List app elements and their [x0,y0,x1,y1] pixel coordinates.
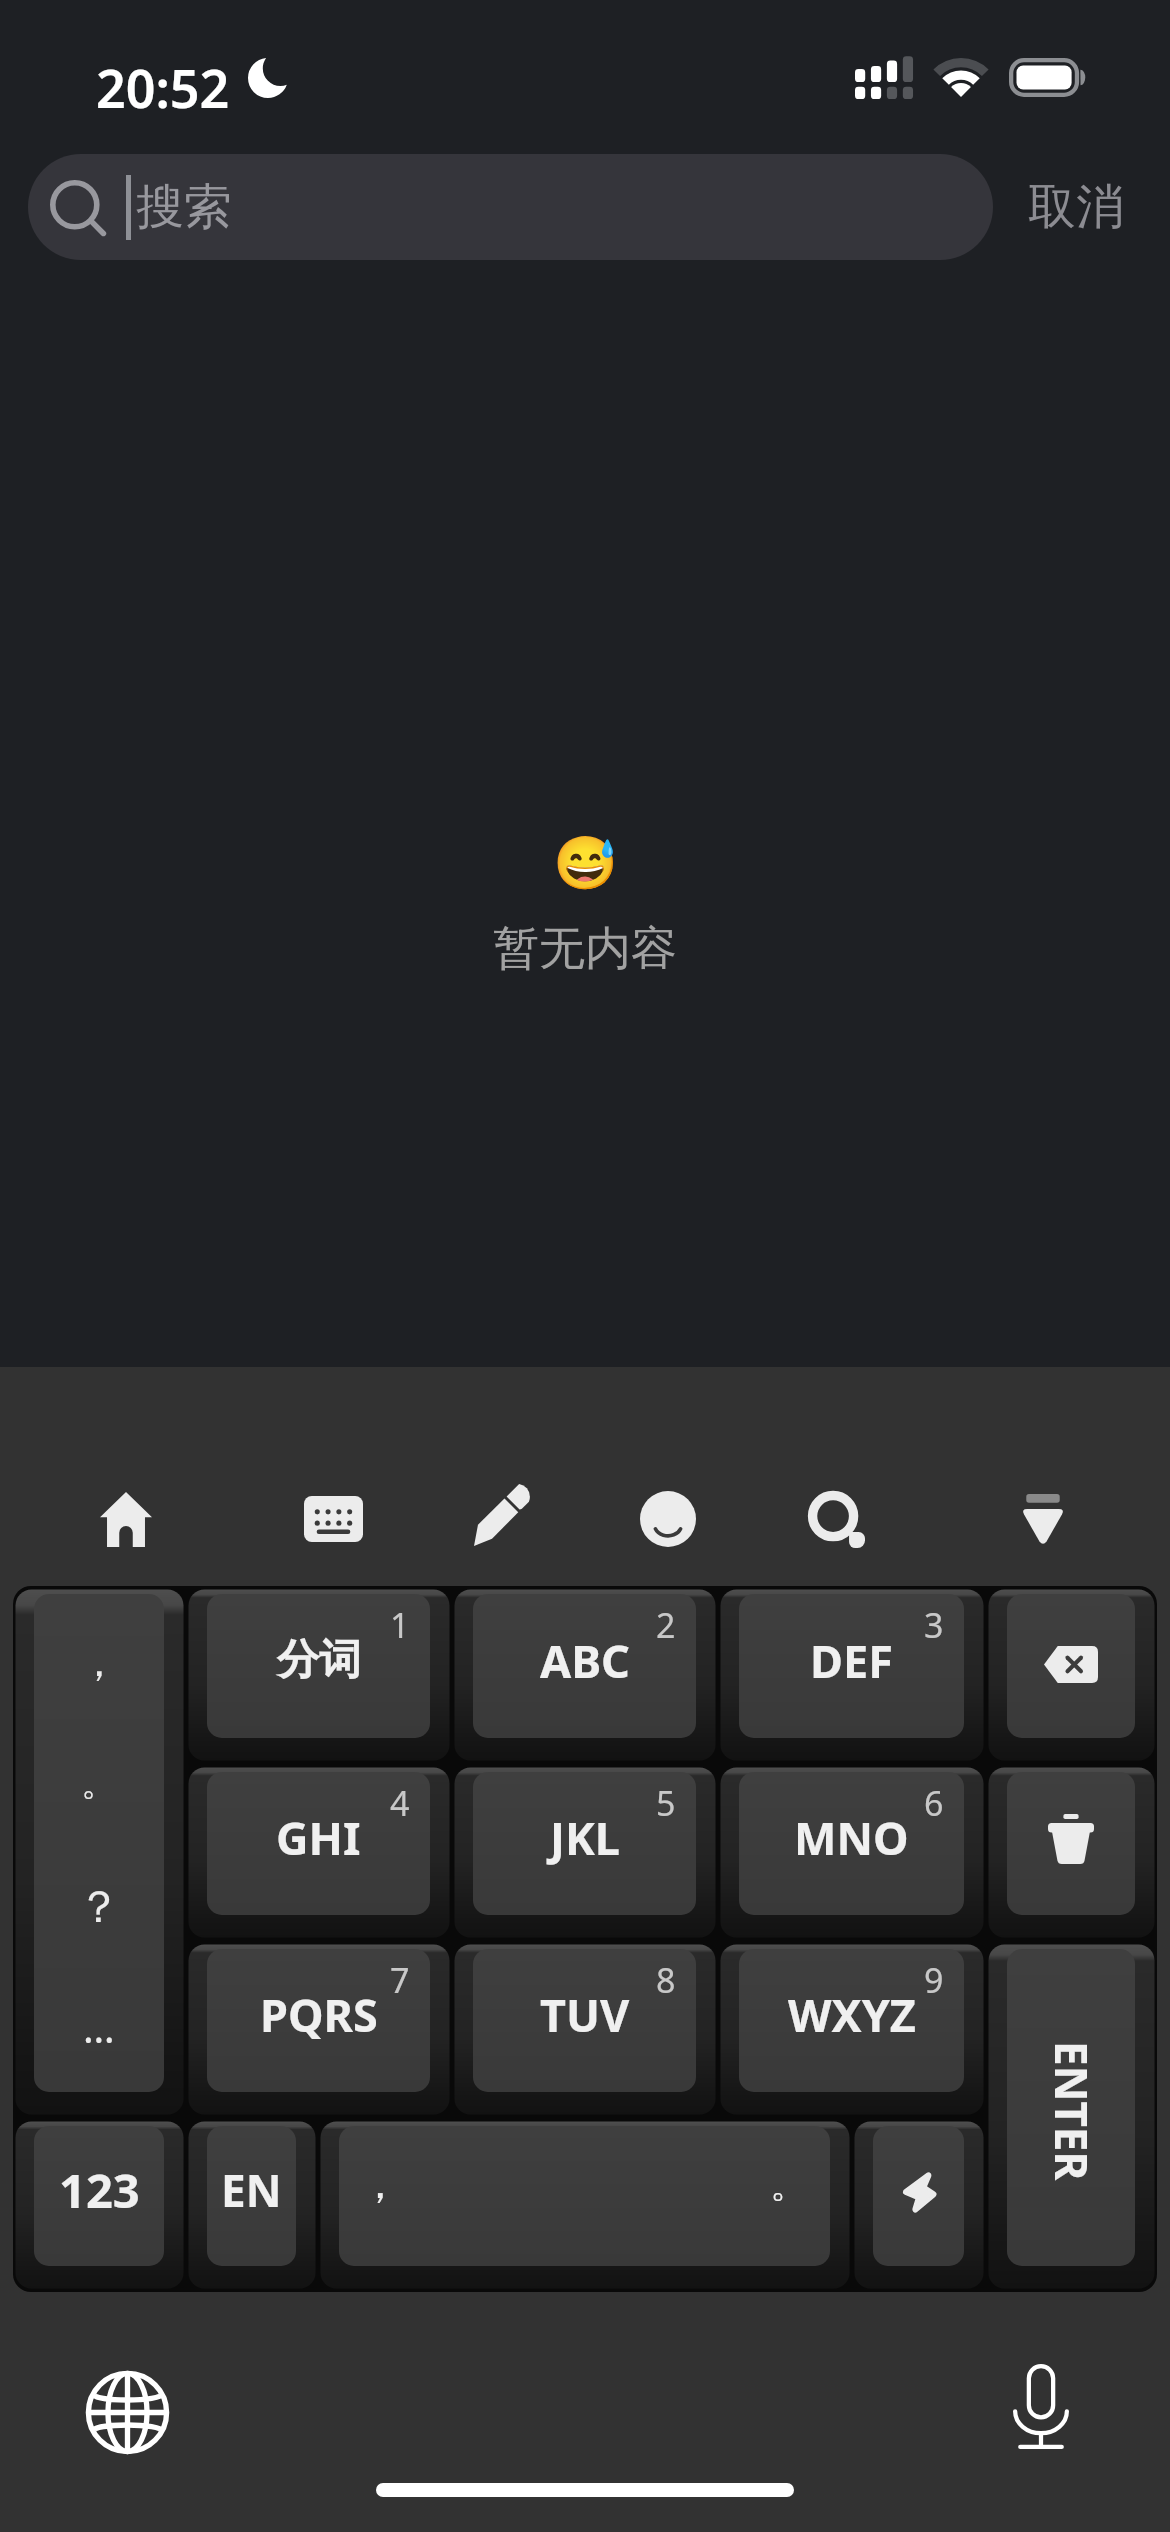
staticText: PQRS [260,1984,378,2045]
staticText: 9 [924,1957,944,2003]
button[interactable]: TUV [452,1941,718,2118]
staticText: 😅 [553,833,618,894]
staticText: TUV [540,1984,630,2045]
staticText: WXYZ [788,1984,916,2045]
staticText: ABC [540,1630,630,1691]
staticText: 20:52 [96,52,230,123]
button[interactable]: 取消 [1005,154,1147,260]
button[interactable]: Search [28,154,993,260]
staticText: DEF [810,1630,893,1691]
staticText: ， [359,2158,401,2211]
button[interactable]: PQRS [186,1941,452,2118]
staticText: 取消 [1028,177,1124,237]
staticText: GHI [276,1807,361,1868]
button[interactable]: Enter [986,1941,1157,2292]
staticText: … [83,2000,115,2054]
staticText: 搜索 [136,177,232,237]
button[interactable]: Quick input [852,2118,986,2292]
staticText: 6 [924,1780,944,1826]
button[interactable]: ABC [452,1586,718,1764]
staticText: ENTER [1042,2041,1102,2181]
button[interactable]: GHI [186,1764,452,1941]
staticText: MNO [794,1807,909,1868]
staticText: 1 [390,1602,410,1648]
staticText: 2 [656,1602,676,1648]
button[interactable]: Handwriting [416,1429,584,1609]
staticText: 8 [656,1957,676,2003]
button[interactable]: Voice input [961,2326,1121,2488]
button[interactable]: 分词 [186,1586,452,1764]
staticText: 3 [924,1602,944,1648]
button[interactable]: 123 [13,2118,186,2292]
button[interactable]: Keyboard [249,1429,417,1609]
button[interactable]: EN [186,2118,318,2292]
staticText: 。 [770,2160,808,2208]
staticText: JKL [550,1807,620,1868]
button[interactable]: MNO [718,1764,986,1941]
button[interactable]: JKL [452,1764,718,1941]
button[interactable]: Backspace [986,1586,1157,1764]
button[interactable]: Home [42,1429,210,1609]
staticText: 。 [81,1760,117,1805]
button[interactable]: Space [318,2118,852,2292]
staticText: 7 [390,1957,410,2003]
staticText: 4 [390,1780,410,1826]
staticText: 123 [59,2158,140,2222]
button[interactable]: DEF [718,1586,986,1764]
button[interactable]: Change language [47,2331,207,2493]
button[interactable]: Hide keyboard [959,1429,1127,1609]
staticText: 暂无内容 [493,920,677,978]
button[interactable]: Punctuation [13,1586,186,2118]
staticText: EN [221,2160,282,2220]
button[interactable]: Clear [986,1764,1157,1941]
button[interactable]: Voice search [752,1429,920,1609]
button[interactable]: Emoji [584,1429,752,1609]
staticText: ？ [77,1880,121,1935]
button[interactable]: WXYZ [718,1941,986,2118]
staticText: 分词 [277,1634,361,1687]
staticText: 5 [656,1780,676,1826]
staticText: ， [79,1637,119,1687]
